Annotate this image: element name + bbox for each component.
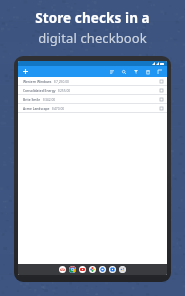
staticText: Acme Landscape — [23, 106, 50, 110]
button[interactable]: Duo — [99, 266, 106, 273]
button[interactable]: Photos — [89, 266, 96, 273]
staticText: Western Windows — [23, 79, 52, 83]
button[interactable]: Gmail — [59, 266, 66, 273]
staticText: $255.00 — [58, 88, 71, 92]
button[interactable]: Brite Smile — [18, 95, 167, 103]
button[interactable]: Consolidated Energy — [18, 86, 167, 94]
button[interactable]: Select Western Windows — [160, 80, 163, 83]
staticText: digital checkbook — [38, 29, 147, 47]
button[interactable]: Select Consolidated Energy — [160, 89, 163, 92]
button[interactable]: Select Brite Smile — [160, 98, 163, 101]
button[interactable]: More — [156, 68, 164, 76]
button[interactable]: Assistant — [119, 266, 126, 273]
button[interactable]: Search — [120, 68, 128, 76]
button[interactable]: Add check — [21, 67, 30, 76]
button[interactable]: Acme Landscape — [18, 104, 167, 112]
staticText: $470.00 — [52, 106, 65, 110]
button[interactable]: Chrome — [69, 266, 76, 273]
button[interactable]: Select Acme Landscape — [160, 107, 163, 110]
staticText: Consolidated Energy — [23, 88, 56, 92]
staticText: Store checks in a — [35, 9, 150, 27]
button[interactable]: Maps — [109, 266, 116, 273]
button[interactable]: YouTube — [79, 266, 86, 273]
button[interactable]: Sort — [108, 68, 116, 76]
staticText: Brite Smile — [23, 97, 41, 101]
staticText: $7,250.00 — [54, 79, 69, 83]
button[interactable]: Delete — [144, 68, 152, 76]
button[interactable]: Filter — [132, 68, 140, 76]
button[interactable]: Western Windows — [18, 77, 167, 85]
staticText: $342.00 — [43, 97, 56, 101]
